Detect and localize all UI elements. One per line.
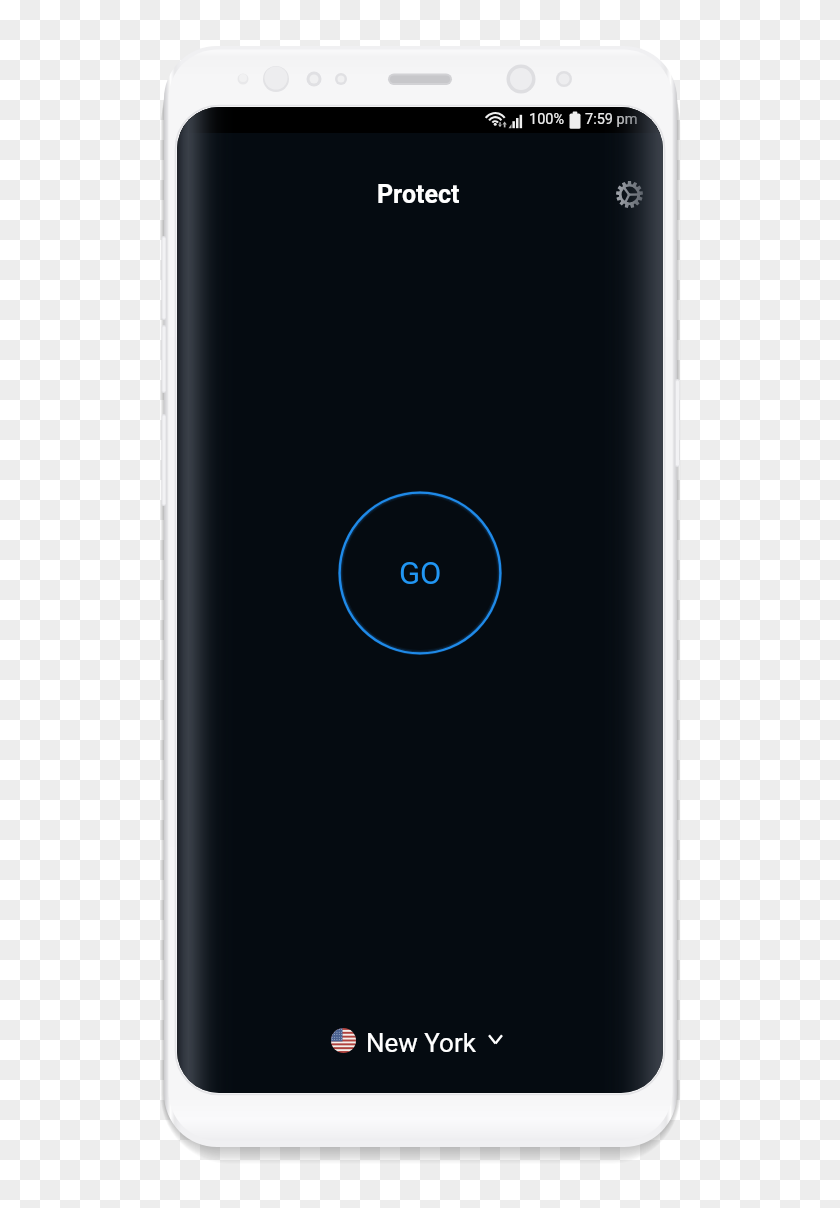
staticText: GO <box>399 555 442 591</box>
staticText: 7:59 pm <box>585 111 638 128</box>
staticText: Protect <box>377 180 460 209</box>
staticText: 100% <box>529 111 565 128</box>
button[interactable]: GO <box>338 491 502 655</box>
button[interactable]: New York <box>327 1019 507 1067</box>
staticText: New York <box>366 1028 476 1058</box>
button[interactable]: Settings <box>608 173 650 215</box>
